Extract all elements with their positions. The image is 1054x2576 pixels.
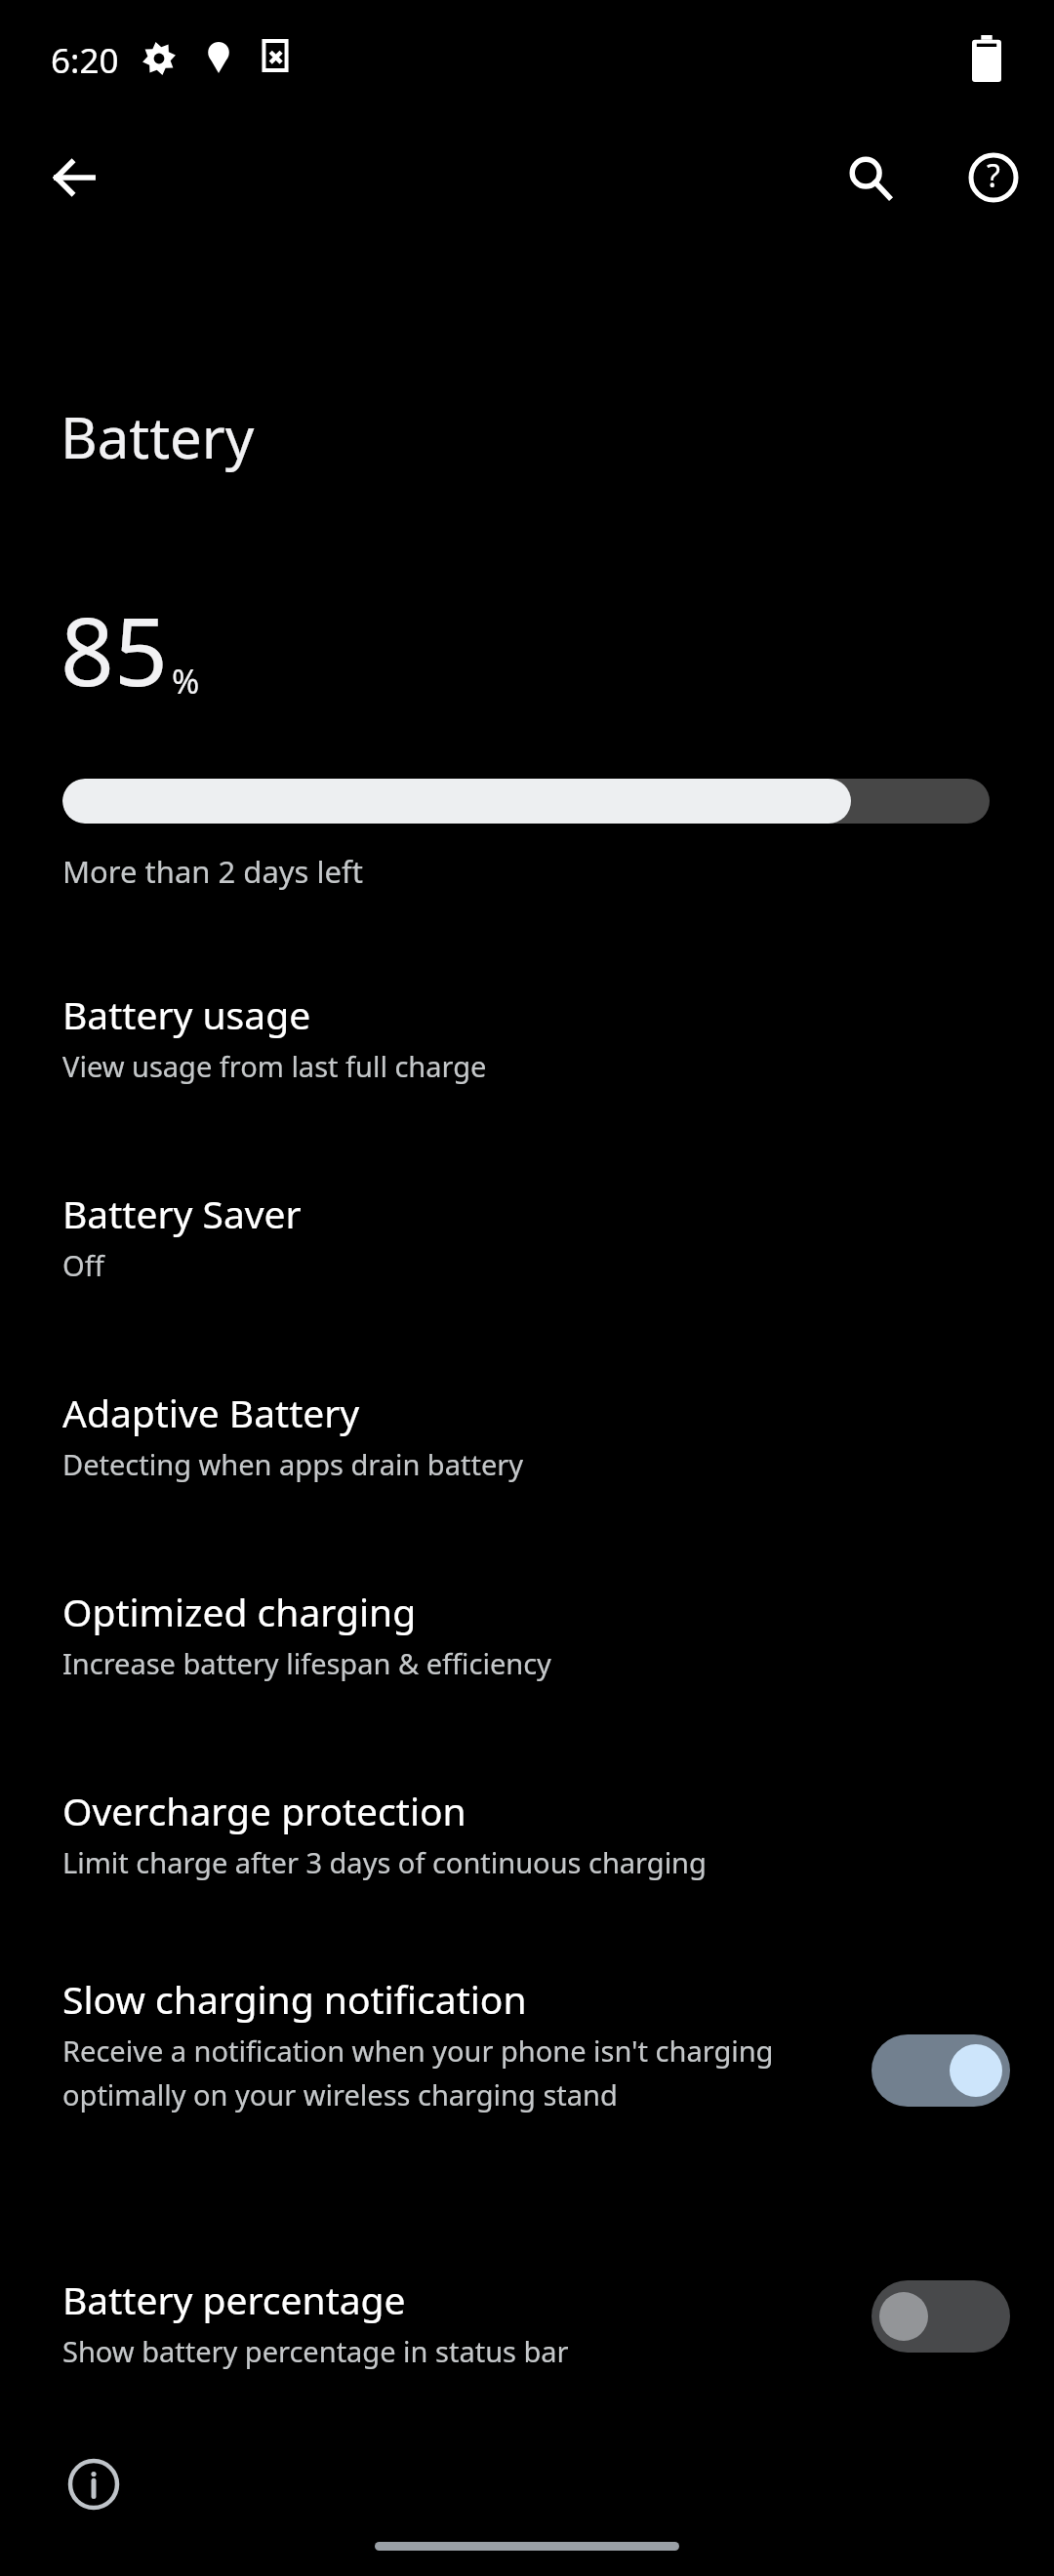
button[interactable]: Search (825, 133, 914, 222)
button[interactable]: Overcharge protection (0, 1785, 1054, 1976)
staticText: Slow charging notification (62, 1973, 527, 2025)
button[interactable]: Adaptive Battery (0, 1387, 1054, 1578)
staticText: Show battery percentage in status bar (62, 2332, 569, 2370)
button[interactable]: Help (949, 133, 1038, 222)
button[interactable]: Battery usage (0, 988, 1054, 1180)
staticText: Increase battery lifespan & efficiency (62, 1644, 551, 1682)
button[interactable]: Back (29, 133, 119, 222)
button[interactable]: Battery Saver (0, 1187, 1054, 1379)
staticText: 85 (61, 585, 168, 713)
staticText: Receive a notification when your phone i… (62, 2032, 833, 2114)
staticText: Detecting when apps drain battery (62, 1445, 524, 1483)
staticText: Adaptive Battery (62, 1387, 360, 1438)
button[interactable]: Optimized charging (0, 1586, 1054, 1777)
staticText: % (172, 659, 200, 704)
staticText: Optimized charging (62, 1586, 417, 1637)
staticText: Battery (61, 398, 255, 475)
staticText: Off (62, 1246, 104, 1284)
staticText: Limit charge after 3 days of continuous … (62, 1843, 707, 1881)
staticText: View usage from last full charge (62, 1047, 487, 1085)
button[interactable]: Slow charging notification (0, 1973, 1054, 2197)
staticText: 6:20 (51, 37, 119, 84)
button[interactable]: Information (61, 2451, 127, 2517)
staticText: ? (987, 154, 1000, 197)
staticText: More than 2 days left (62, 851, 363, 892)
staticText: Battery usage (62, 988, 311, 1040)
staticText: Battery Saver (62, 1187, 302, 1239)
button[interactable]: Toggle on (872, 2034, 1010, 2107)
button[interactable]: Battery percentage (0, 2274, 1054, 2420)
staticText: Battery percentage (62, 2274, 406, 2325)
staticText: Overcharge protection (62, 1785, 466, 1836)
button[interactable]: Toggle off (872, 2280, 1010, 2353)
